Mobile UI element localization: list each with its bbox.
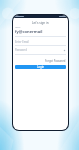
- staticText: fy@conermail: [15, 29, 43, 35]
- staticText: Let's sign in: [32, 21, 49, 25]
- staticText: Enter Email: [15, 40, 29, 44]
- staticText: Hello: [15, 26, 21, 29]
- button[interactable]: Let's sign in: [13, 21, 68, 25]
- staticText: Password: [15, 48, 27, 52]
- button[interactable]: Login: [15, 65, 66, 69]
- button[interactable]: Show password: [63, 49, 66, 52]
- button[interactable]: Forgot Password: [45, 59, 66, 63]
- staticText: Login: [37, 65, 45, 69]
